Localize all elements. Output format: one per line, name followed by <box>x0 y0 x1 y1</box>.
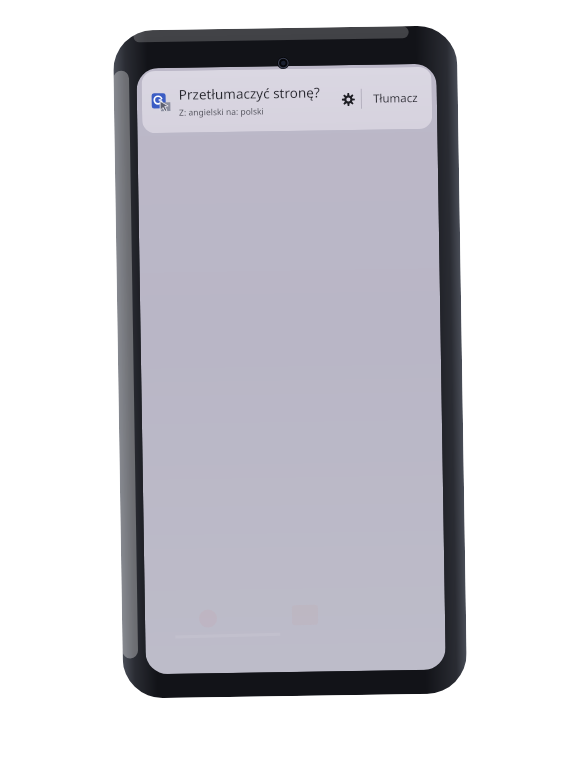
staticText: Tłumacz <box>373 90 418 107</box>
button[interactable]: Ustawienia tłumaczenia <box>335 86 361 112</box>
staticText: Przetłumaczyć stronę? <box>179 83 320 104</box>
button[interactable]: Tłumacz <box>362 78 429 119</box>
button[interactable]: Przetłumaczyć stronę? <box>141 67 432 133</box>
staticText: Z: angielski na: polski <box>179 105 264 119</box>
